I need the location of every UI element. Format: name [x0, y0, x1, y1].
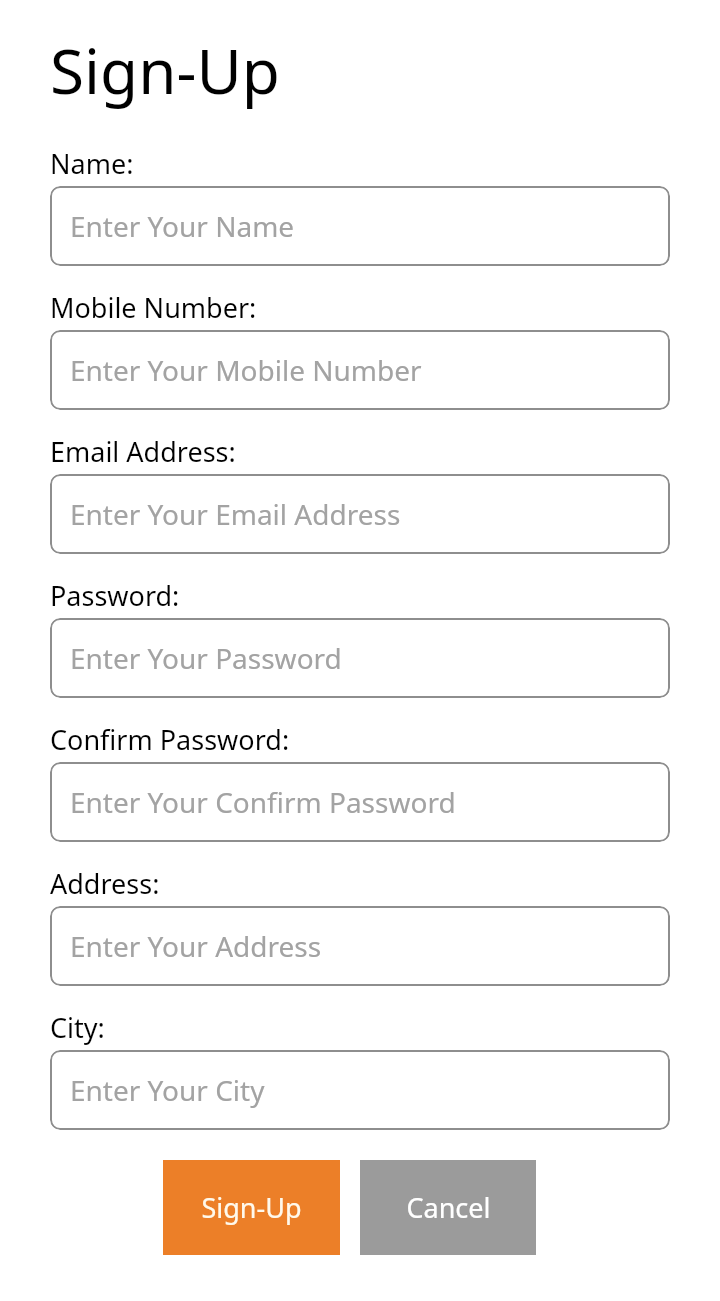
staticText: Enter Your City: [70, 1071, 265, 1109]
staticText: Enter Your Password: [70, 639, 342, 677]
staticText: Address:: [50, 865, 160, 902]
staticText: Sign-Up: [50, 28, 280, 112]
staticText: Name:: [50, 145, 134, 182]
staticText: Enter Your Name: [70, 207, 295, 245]
button[interactable]: Enter Your Address: [50, 906, 670, 986]
button[interactable]: Cancel: [360, 1160, 536, 1255]
button[interactable]: Enter Your City: [50, 1050, 670, 1130]
staticText: Password:: [50, 577, 180, 614]
button[interactable]: Sign-Up: [163, 1160, 340, 1255]
staticText: Mobile Number:: [50, 289, 257, 326]
staticText: Email Address:: [50, 433, 236, 470]
staticText: Sign-Up: [201, 1189, 302, 1226]
button[interactable]: Enter Your Email Address: [50, 474, 670, 554]
staticText: Confirm Password:: [50, 721, 290, 758]
staticText: Enter Your Mobile Number: [70, 351, 422, 389]
button[interactable]: Enter Your Name: [50, 186, 670, 266]
staticText: Enter Your Email Address: [70, 495, 401, 533]
staticText: City:: [50, 1009, 105, 1046]
button[interactable]: Enter Your Mobile Number: [50, 330, 670, 410]
staticText: Cancel: [406, 1189, 491, 1226]
staticText: Enter Your Confirm Password: [70, 783, 456, 821]
button[interactable]: Enter Your Confirm Password: [50, 762, 670, 842]
staticText: Enter Your Address: [70, 927, 322, 965]
button[interactable]: Enter Your Password: [50, 618, 670, 698]
